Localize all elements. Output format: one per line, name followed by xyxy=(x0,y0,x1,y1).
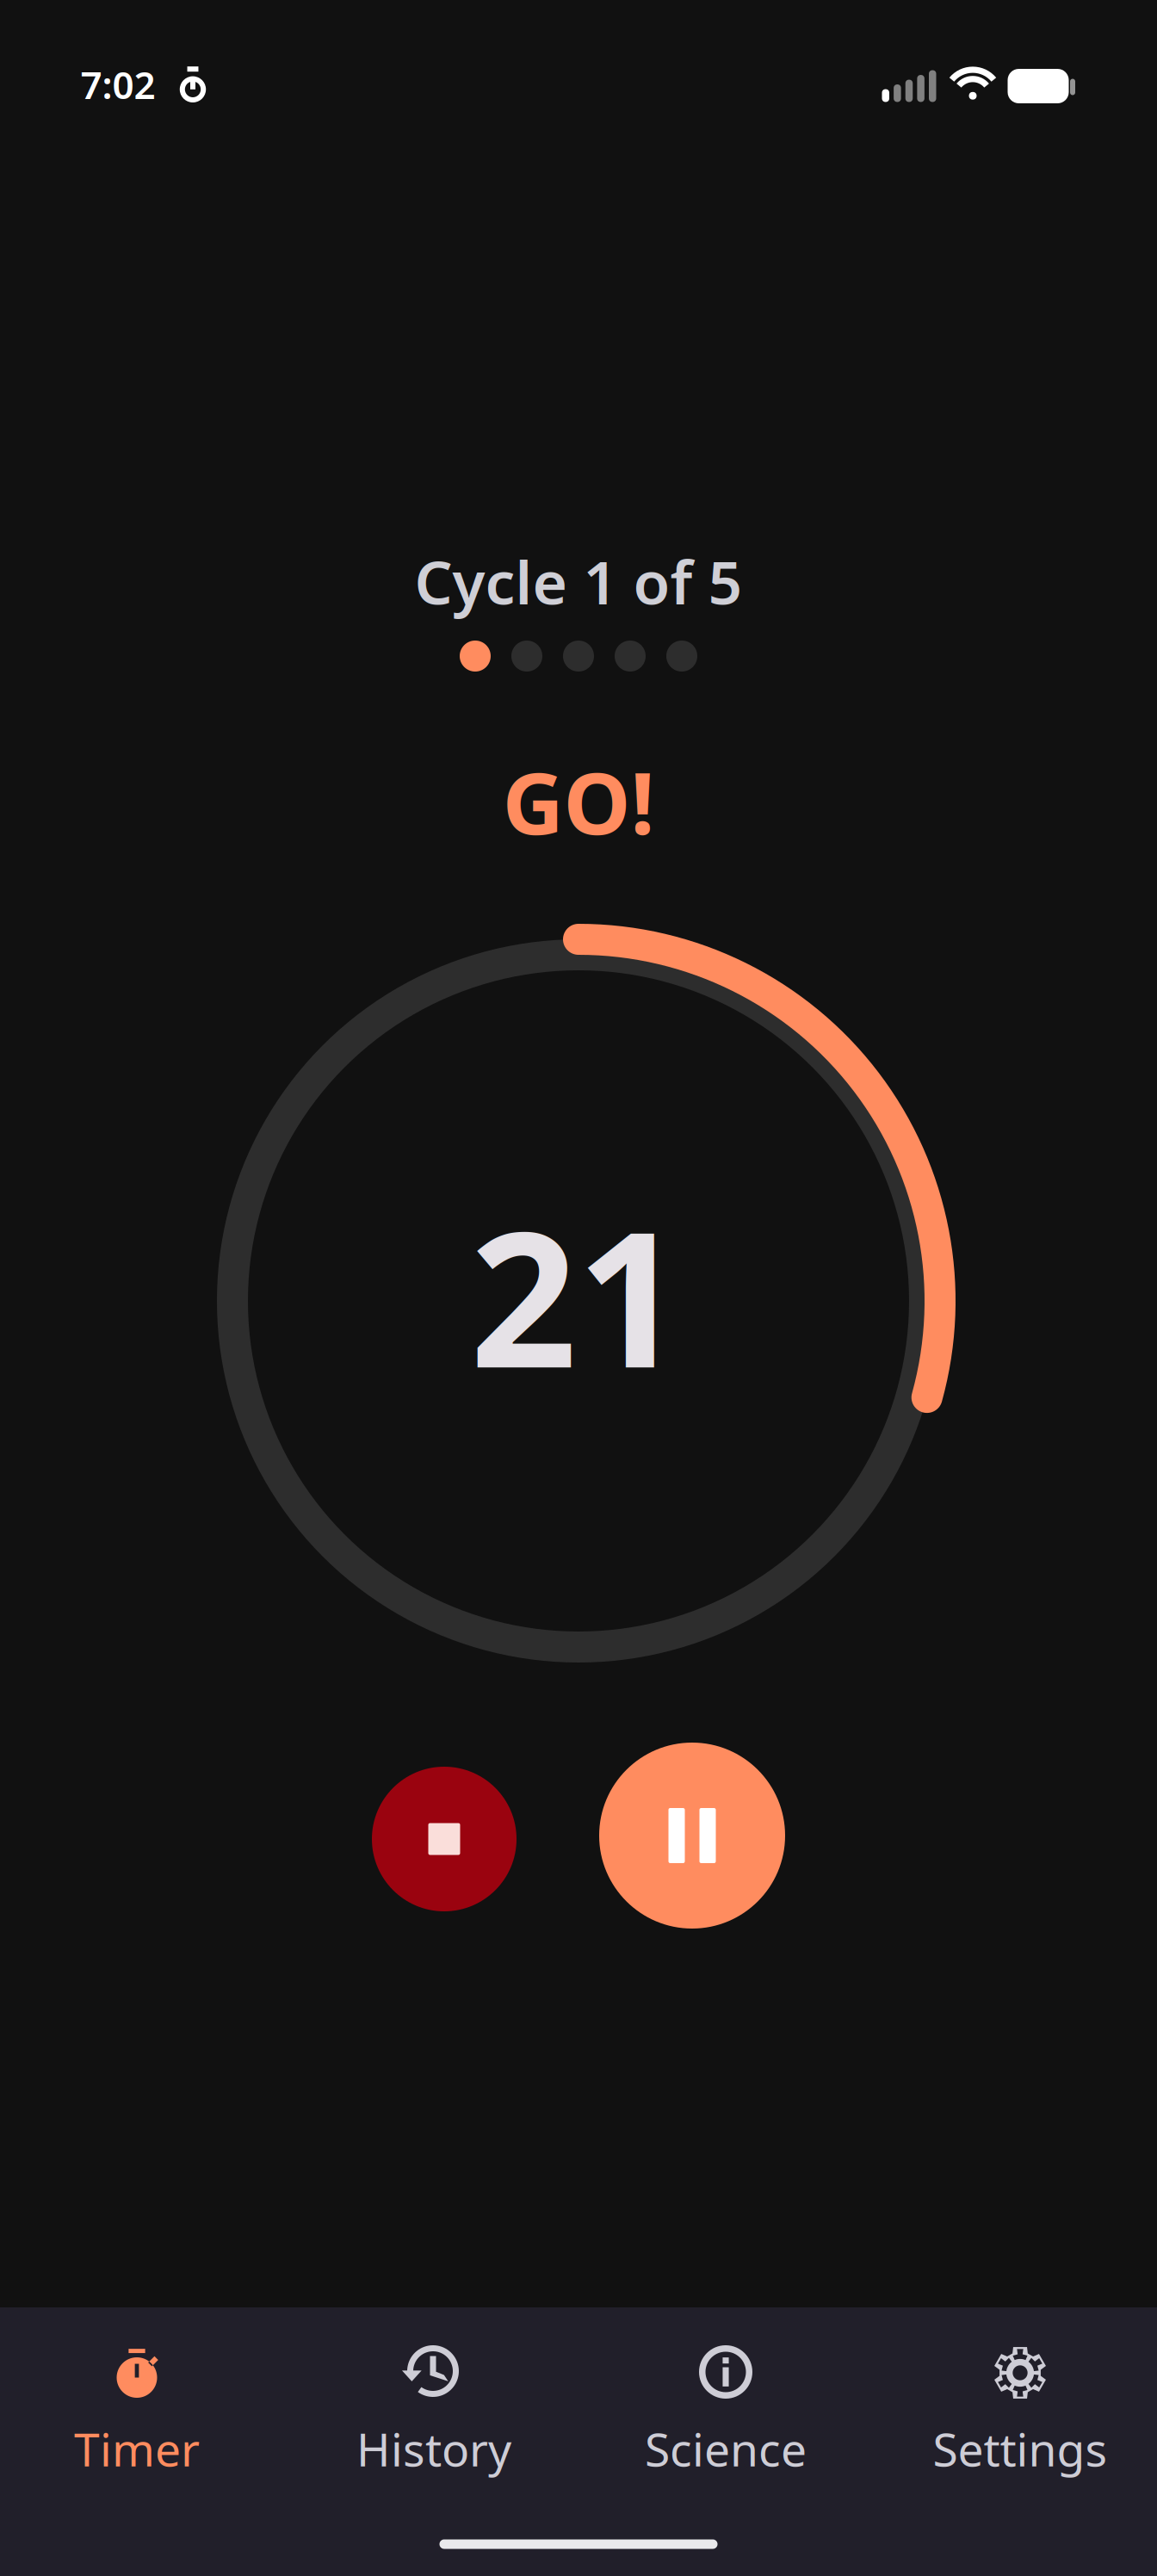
staticText: History xyxy=(356,2418,511,2479)
button[interactable]: Pause xyxy=(599,1743,785,1929)
staticText: GO! xyxy=(502,745,655,858)
button[interactable]: Timer xyxy=(8,2328,266,2488)
button[interactable]: Settings xyxy=(891,2328,1149,2488)
staticText: 21 xyxy=(470,1171,684,1419)
staticText: 7:02 xyxy=(80,59,155,110)
staticText: Cycle 1 of 5 xyxy=(415,542,742,621)
staticText: Science xyxy=(645,2418,807,2479)
staticText: Timer xyxy=(74,2418,200,2479)
button[interactable]: History xyxy=(305,2328,563,2488)
staticText: Settings xyxy=(933,2418,1108,2479)
button[interactable]: Science xyxy=(597,2328,855,2488)
button[interactable]: Stop xyxy=(372,1767,517,1911)
